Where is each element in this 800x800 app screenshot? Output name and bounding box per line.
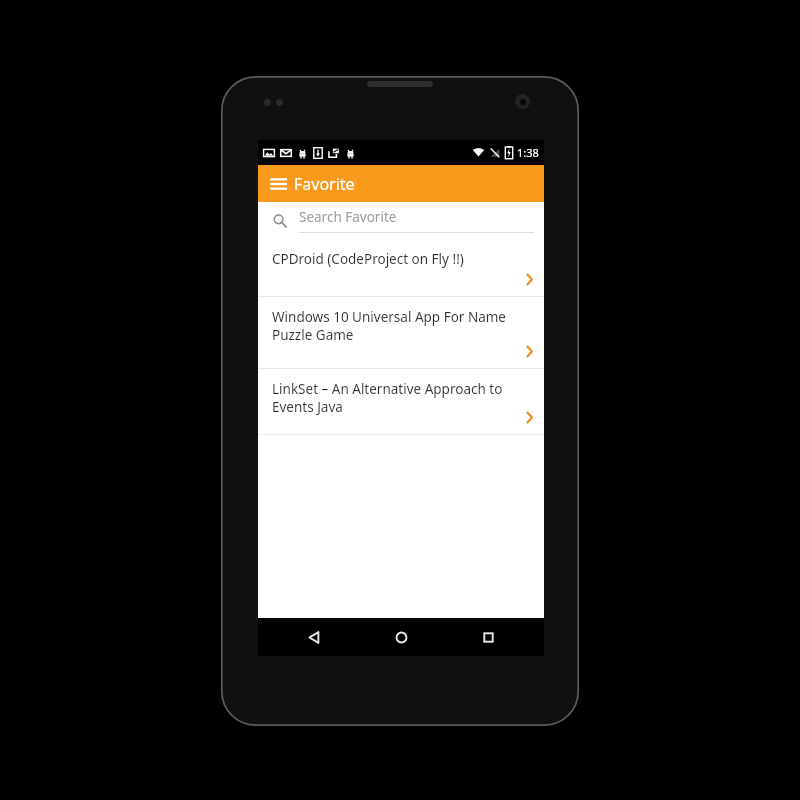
staticText: Windows 10 Universal App For Name Puzzle… bbox=[272, 308, 520, 344]
button[interactable]: Recent apps bbox=[457, 618, 519, 656]
button[interactable]: LinkSet – An Alternative Approach to Eve… bbox=[258, 369, 544, 434]
button[interactable]: Search Favorite bbox=[258, 202, 544, 239]
staticText: Search Favorite bbox=[299, 208, 397, 226]
button[interactable]: Home bbox=[370, 618, 432, 656]
staticText: 1:38 bbox=[517, 145, 539, 160]
staticText: CPDroid (CodeProject on Fly !!) bbox=[272, 250, 464, 268]
button[interactable]: Back bbox=[283, 618, 345, 656]
staticText: LinkSet – An Alternative Approach to Eve… bbox=[272, 380, 520, 416]
button[interactable]: Windows 10 Universal App For Name Puzzle… bbox=[258, 297, 544, 368]
button[interactable]: CPDroid (CodeProject on Fly !!) bbox=[258, 239, 544, 296]
button[interactable]: Open navigation drawer bbox=[265, 171, 291, 197]
staticText: Favorite bbox=[294, 173, 355, 195]
